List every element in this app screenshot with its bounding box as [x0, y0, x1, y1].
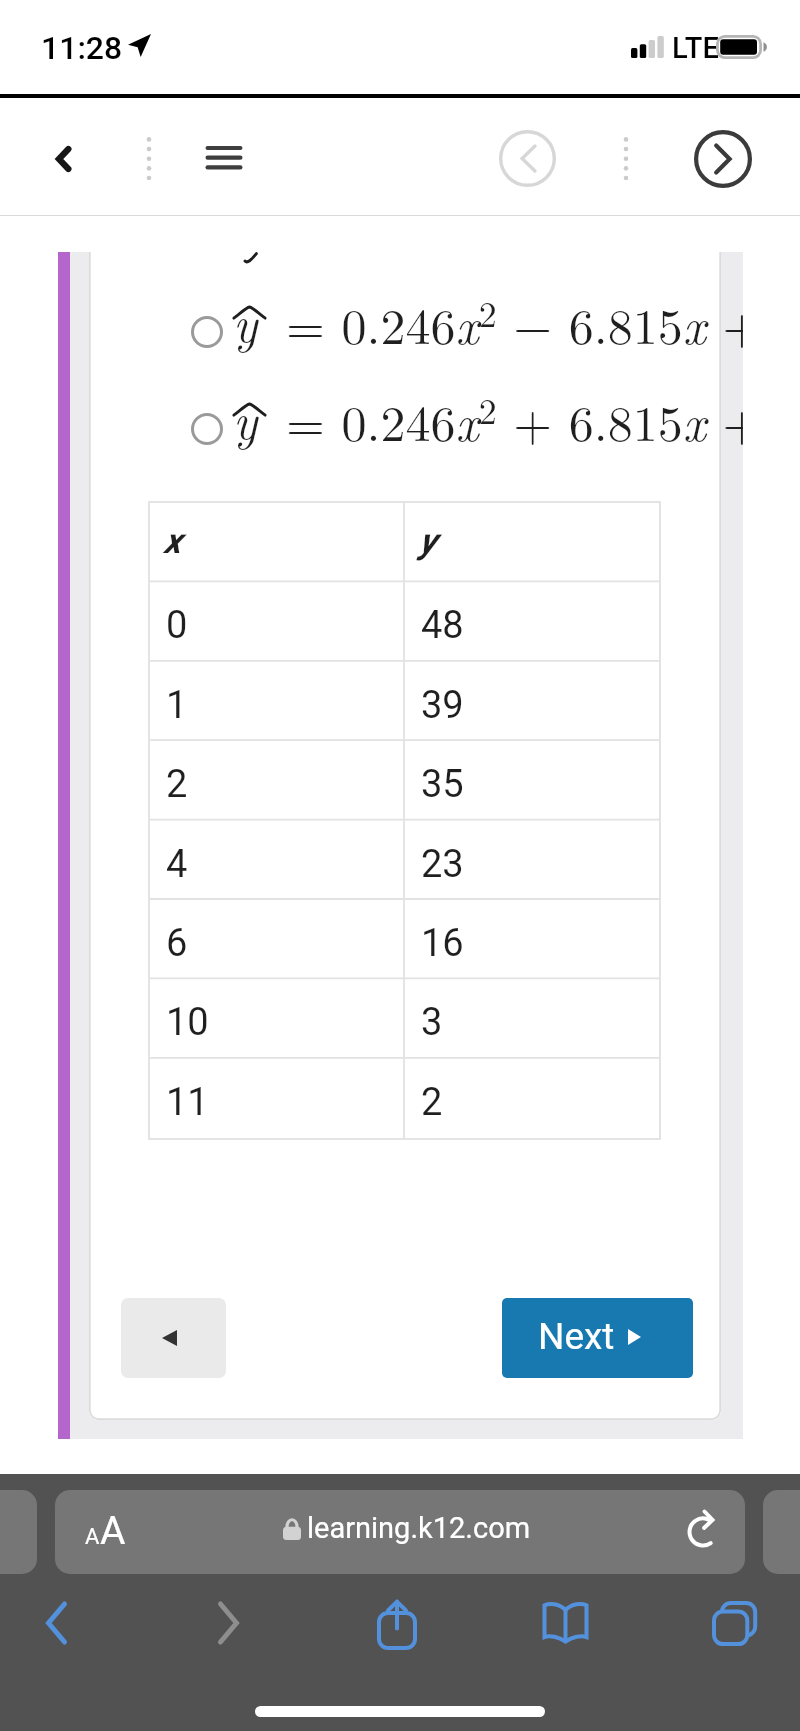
- staticText: y: [233, 286, 258, 357]
- staticText: 16: [421, 921, 464, 966]
- button[interactable]: Previous: [496, 98, 561, 215]
- staticText: 0: [166, 603, 188, 648]
- staticText: 35: [421, 762, 464, 807]
- staticText: 48: [421, 603, 464, 648]
- staticText: 11:28: [41, 29, 123, 67]
- staticText: 6: [166, 921, 188, 966]
- staticText: 2: [166, 762, 188, 807]
- button[interactable]: Next: [502, 1298, 693, 1378]
- staticText: Next: [538, 1315, 615, 1358]
- staticText: 2: [421, 1080, 443, 1125]
- staticText: = 0.246x2 − 6.815x +: [286, 286, 743, 356]
- button[interactable]: Bookmarks: [509, 1587, 621, 1659]
- button[interactable]: Previous question: [121, 1298, 226, 1378]
- button[interactable]: Reload: [680, 1508, 726, 1554]
- staticText: y: [419, 521, 437, 562]
- staticText: 1: [166, 683, 188, 728]
- button[interactable]: A: [55, 1490, 745, 1574]
- staticText: 10: [166, 1000, 209, 1045]
- staticText: x: [164, 521, 182, 562]
- button[interactable]: Back: [0, 1587, 112, 1659]
- staticText: 11: [166, 1080, 209, 1125]
- button[interactable]: Next page: [691, 98, 756, 215]
- staticText: y: [233, 383, 258, 454]
- staticText: learning.k12.com: [307, 1511, 531, 1545]
- staticText: A: [100, 1508, 126, 1554]
- button[interactable]: Forward: [172, 1587, 284, 1659]
- button[interactable]: Share: [341, 1587, 453, 1659]
- staticText: 4: [166, 842, 188, 887]
- staticText: 23: [421, 842, 464, 887]
- staticText: 3: [421, 1000, 443, 1045]
- staticText: A: [85, 1524, 100, 1550]
- button[interactable]: Menu: [188, 98, 260, 215]
- button[interactable]: Tabs: [678, 1587, 790, 1659]
- staticText: = 0.246x2 + 6.815x +: [286, 383, 743, 453]
- staticText: 39: [421, 683, 464, 728]
- staticText: LTE: [672, 31, 719, 65]
- button[interactable]: Back: [28, 98, 98, 215]
